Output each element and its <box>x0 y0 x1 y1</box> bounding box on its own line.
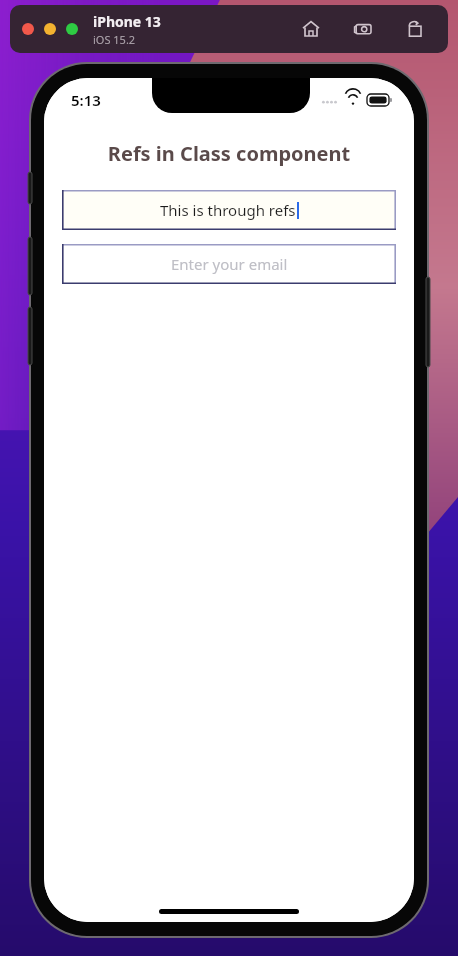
button[interactable]: Zoom <box>66 23 78 35</box>
staticText: iPhone 13 <box>93 12 161 31</box>
button[interactable]: Home <box>298 16 324 42</box>
staticText: Refs in Class component <box>44 140 414 167</box>
staticText: iOS 15.2 <box>93 32 136 47</box>
staticText: 5:13 <box>71 90 101 110</box>
staticText: Enter your email <box>171 254 288 274</box>
button[interactable]: Record screen <box>402 16 428 42</box>
staticText: This is through refs <box>160 200 296 220</box>
button[interactable]: Minimize <box>44 23 56 35</box>
button[interactable]: Close <box>22 23 34 35</box>
button[interactable]: Screenshot <box>350 16 376 42</box>
button[interactable]: This is through refs <box>62 190 396 230</box>
button[interactable]: Enter your email <box>62 244 396 284</box>
